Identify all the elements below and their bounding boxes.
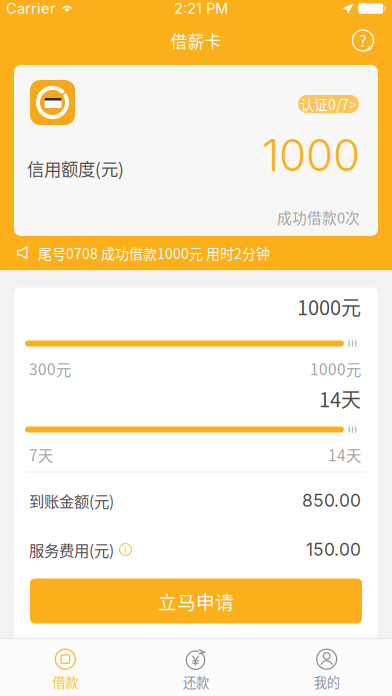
staticText: ? bbox=[359, 28, 367, 52]
button[interactable]: 借款 bbox=[0, 648, 131, 691]
staticText: 借薪卡 bbox=[170, 28, 221, 52]
button[interactable]: Help bbox=[340, 18, 392, 62]
button[interactable]: 立马申请 bbox=[30, 578, 362, 623]
button[interactable]: 还款 bbox=[131, 648, 261, 691]
staticText: 借款 bbox=[52, 672, 78, 691]
staticText: i bbox=[124, 542, 127, 556]
staticText: 2:21 PM bbox=[174, 0, 228, 17]
staticText: 1000元 bbox=[310, 357, 361, 380]
staticText: 850.00 bbox=[302, 490, 361, 511]
staticText: 1000元 bbox=[297, 292, 361, 321]
button[interactable]: 我的 bbox=[261, 648, 392, 691]
staticText: 立马申请 bbox=[158, 587, 234, 614]
staticText: 1000 bbox=[262, 128, 360, 182]
staticText: 14天 bbox=[328, 443, 361, 466]
staticText: 150.00 bbox=[306, 539, 361, 560]
staticText: 信用额度(元) bbox=[27, 155, 124, 181]
staticText: 我的 bbox=[314, 672, 340, 691]
staticText: 成功借款0次 bbox=[277, 206, 360, 228]
staticText: 服务费用(元) bbox=[29, 538, 114, 561]
staticText: 尾号0708 成功借款1000元 用时2分钟 bbox=[38, 243, 270, 263]
staticText: 还款 bbox=[183, 672, 209, 691]
staticText: Carrier bbox=[6, 0, 56, 17]
staticText: 7天 bbox=[29, 443, 53, 466]
staticText: 300元 bbox=[29, 357, 71, 380]
staticText: 到账金额(元) bbox=[29, 489, 114, 512]
staticText: 认证0/7> bbox=[300, 94, 357, 114]
staticText: 14天 bbox=[319, 384, 361, 413]
